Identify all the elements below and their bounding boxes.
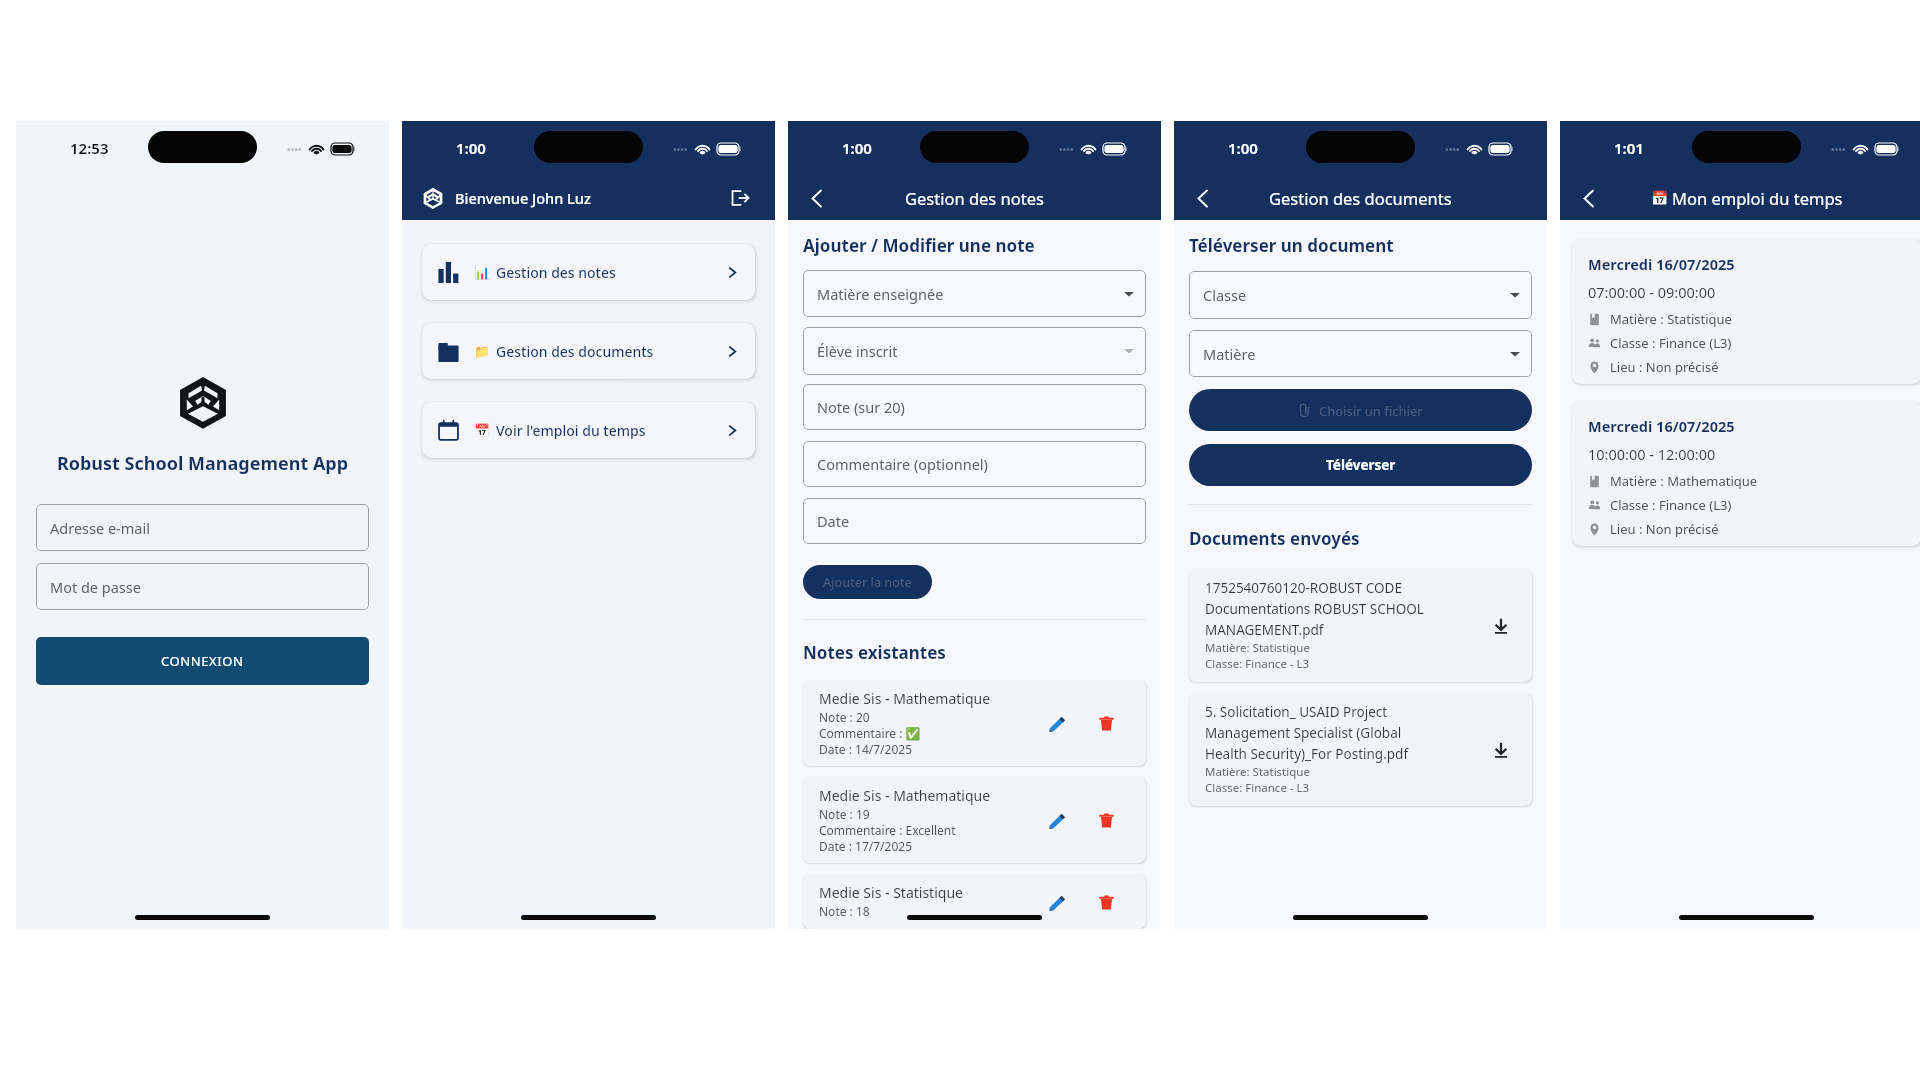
- button[interactable]: Élève inscrit: [803, 327, 1146, 375]
- button[interactable]: Commentaire (optionnel): [803, 441, 1146, 487]
- button[interactable]: 1752540760120-ROBUST CODE Documentations…: [1189, 569, 1532, 682]
- staticText: Matière: Statistique: [1205, 640, 1310, 656]
- staticText: Classe : Finance (L3): [1610, 496, 1732, 514]
- staticText: Date : 14/7/2025: [819, 741, 913, 757]
- button[interactable]: Matière: [1189, 330, 1532, 377]
- staticText: Classe : Finance (L3): [1610, 334, 1732, 352]
- button[interactable]: CONNEXION: [36, 637, 369, 685]
- staticText: Matière enseignée: [817, 284, 944, 304]
- staticText: 07:00:00 - 09:00:00: [1588, 282, 1716, 302]
- staticText: Gestion des documents: [1269, 187, 1452, 209]
- button[interactable]: Date: [803, 498, 1146, 544]
- staticText: 12:53: [70, 138, 109, 158]
- staticText: Gestion des documents: [496, 342, 654, 361]
- staticText: Ajouter / Modifier une note: [803, 234, 1035, 257]
- staticText: Classe: Finance - L3: [1205, 656, 1310, 672]
- staticText: Gestion des notes: [496, 263, 616, 282]
- staticText: 📊: [474, 265, 491, 280]
- staticText: Medie Sis - Mathematique: [819, 786, 991, 805]
- button[interactable]: 📅: [422, 402, 755, 458]
- button[interactable]: Mercredi 16/07/2025: [1572, 239, 1920, 384]
- staticText: Bienvenue John Luz: [455, 188, 591, 208]
- button[interactable]: Medie Sis - Statistique: [803, 874, 1146, 929]
- staticText: 📅: [1651, 190, 1669, 206]
- button[interactable]: Modifier: [1044, 710, 1070, 736]
- button[interactable]: Ajouter la note: [803, 565, 932, 599]
- staticText: Adresse e-mail: [50, 518, 150, 538]
- staticText: 1:00: [456, 138, 486, 158]
- staticText: 📅: [474, 423, 491, 438]
- staticText: Matière : Mathematique: [1610, 472, 1758, 490]
- staticText: Ajouter la note: [823, 574, 912, 591]
- staticText: Mercredi 16/07/2025: [1588, 416, 1735, 436]
- staticText: Mon emploi du temps: [1672, 187, 1843, 209]
- staticText: Voir l'emploi du temps: [496, 421, 646, 440]
- button[interactable]: Télécharger: [1488, 613, 1514, 639]
- staticText: Notes existantes: [803, 641, 946, 664]
- button[interactable]: Retour: [1576, 185, 1602, 211]
- button[interactable]: 📊: [422, 244, 755, 300]
- button[interactable]: 📁: [422, 323, 755, 379]
- button[interactable]: Medie Sis - Mathematique: [803, 777, 1146, 863]
- staticText: Matière: [1203, 344, 1256, 364]
- button[interactable]: Adresse e-mail: [36, 504, 369, 551]
- staticText: 📁: [474, 344, 491, 359]
- staticText: Commentaire : ✅: [819, 725, 921, 741]
- button[interactable]: Retour: [804, 185, 830, 211]
- staticText: Medie Sis - Mathematique: [819, 689, 991, 708]
- staticText: Note : 20: [819, 709, 870, 725]
- staticText: Téléverser: [1326, 456, 1396, 474]
- staticText: Medie Sis - Statistique: [819, 883, 963, 902]
- button[interactable]: Mercredi 16/07/2025: [1572, 401, 1920, 546]
- button[interactable]: Supprimer: [1093, 807, 1119, 833]
- button[interactable]: Supprimer: [1093, 889, 1119, 915]
- button[interactable]: Note (sur 20): [803, 384, 1146, 430]
- staticText: Commentaire (optionnel): [817, 454, 988, 474]
- staticText: Classe: Finance - L3: [1205, 780, 1310, 796]
- staticText: Lieu : Non précisé: [1610, 358, 1719, 376]
- button[interactable]: Déconnexion: [729, 187, 751, 209]
- staticText: Mercredi 16/07/2025: [1588, 254, 1735, 274]
- button[interactable]: 5. Solicitation_ USAID Project Managemen…: [1189, 693, 1532, 806]
- button[interactable]: Modifier: [1044, 889, 1070, 915]
- staticText: Élève inscrit: [817, 341, 898, 361]
- button[interactable]: Modifier: [1044, 807, 1070, 833]
- button[interactable]: Medie Sis - Mathematique: [803, 680, 1146, 766]
- staticText: Matière : Statistique: [1610, 310, 1732, 328]
- staticText: Note : 19: [819, 806, 870, 822]
- staticText: Choisir un fichier: [1319, 402, 1423, 419]
- staticText: 1:01: [1614, 138, 1644, 158]
- staticText: Lieu : Non précisé: [1610, 520, 1719, 538]
- staticText: Gestion des notes: [905, 187, 1044, 209]
- staticText: Note : 18: [819, 903, 870, 919]
- staticText: Classe: [1203, 285, 1247, 305]
- button[interactable]: Mot de passe: [36, 563, 369, 610]
- staticText: CONNEXION: [161, 652, 244, 670]
- staticText: Documents envoyés: [1189, 527, 1360, 550]
- button[interactable]: Classe: [1189, 271, 1532, 319]
- staticText: Téléverser un document: [1189, 234, 1394, 257]
- staticText: Note (sur 20): [817, 397, 905, 417]
- staticText: Date : 17/7/2025: [819, 838, 913, 854]
- staticText: 5. Solicitation_ USAID Project Managemen…: [1205, 703, 1443, 763]
- staticText: Commentaire : Excellent: [819, 822, 956, 838]
- staticText: Mot de passe: [50, 577, 141, 597]
- staticText: 1752540760120-ROBUST CODE Documentations…: [1205, 579, 1443, 639]
- staticText: 10:00:00 - 12:00:00: [1588, 444, 1716, 464]
- button[interactable]: Choisir un fichier: [1189, 389, 1532, 431]
- staticText: Matière: Statistique: [1205, 764, 1310, 780]
- button[interactable]: Télécharger: [1488, 737, 1514, 763]
- button[interactable]: Matière enseignée: [803, 270, 1146, 317]
- staticText: Robust School Management App: [16, 451, 389, 476]
- staticText: 1:00: [1228, 138, 1258, 158]
- button[interactable]: Téléverser: [1189, 444, 1532, 486]
- staticText: 1:00: [842, 138, 872, 158]
- button[interactable]: Supprimer: [1093, 710, 1119, 736]
- button[interactable]: Retour: [1190, 185, 1216, 211]
- staticText: Date: [817, 511, 850, 531]
